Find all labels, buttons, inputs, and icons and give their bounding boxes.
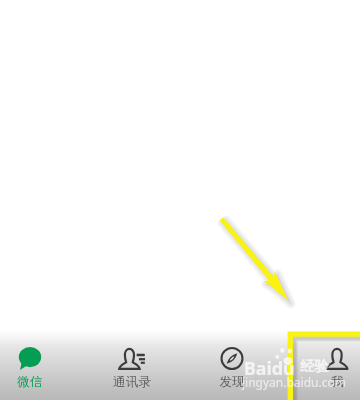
staticText: jingyan.baidu.com	[242, 374, 346, 390]
button[interactable]: Contacts tab	[92, 331, 172, 400]
button[interactable]: WeChat tab	[0, 331, 70, 400]
staticText: 经验	[300, 357, 329, 375]
staticText: 微信	[17, 374, 43, 390]
button[interactable]: Me tab	[297, 331, 360, 400]
staticText: 我	[331, 374, 344, 390]
button[interactable]: Discover tab	[192, 331, 272, 400]
staticText: Baidu	[244, 356, 295, 380]
staticText: 发现	[219, 374, 245, 390]
staticText: 通讯录	[113, 374, 151, 390]
